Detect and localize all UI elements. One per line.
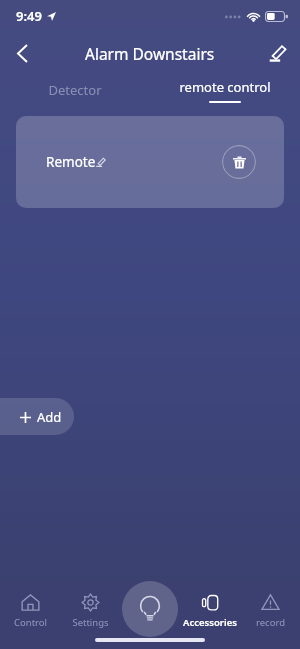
staticText: Alarm Downstairs <box>85 43 215 64</box>
staticText: Accessories <box>183 616 237 629</box>
staticText: Control <box>14 616 47 629</box>
button[interactable]: Add <box>0 398 74 435</box>
staticText: Detector <box>48 81 102 99</box>
staticText: 9:49 <box>16 7 42 25</box>
staticText: remote control <box>179 78 271 96</box>
staticText: Remote <box>46 153 96 171</box>
button[interactable]: Delete <box>222 145 256 179</box>
button[interactable]: Control <box>0 585 60 637</box>
button[interactable]: Settings <box>60 585 120 637</box>
button[interactable]: Detector <box>0 74 150 106</box>
button[interactable]: Remote <box>16 116 284 208</box>
button[interactable]: record <box>240 585 300 637</box>
staticText: Settings <box>72 616 109 629</box>
staticText: record <box>256 616 285 629</box>
staticText: Add <box>37 408 62 426</box>
button[interactable]: Lights <box>122 581 178 637</box>
button[interactable]: Back <box>0 32 44 74</box>
button[interactable]: Edit <box>256 32 300 74</box>
button[interactable]: remote control <box>150 74 300 106</box>
button[interactable]: Accessories <box>180 585 240 637</box>
